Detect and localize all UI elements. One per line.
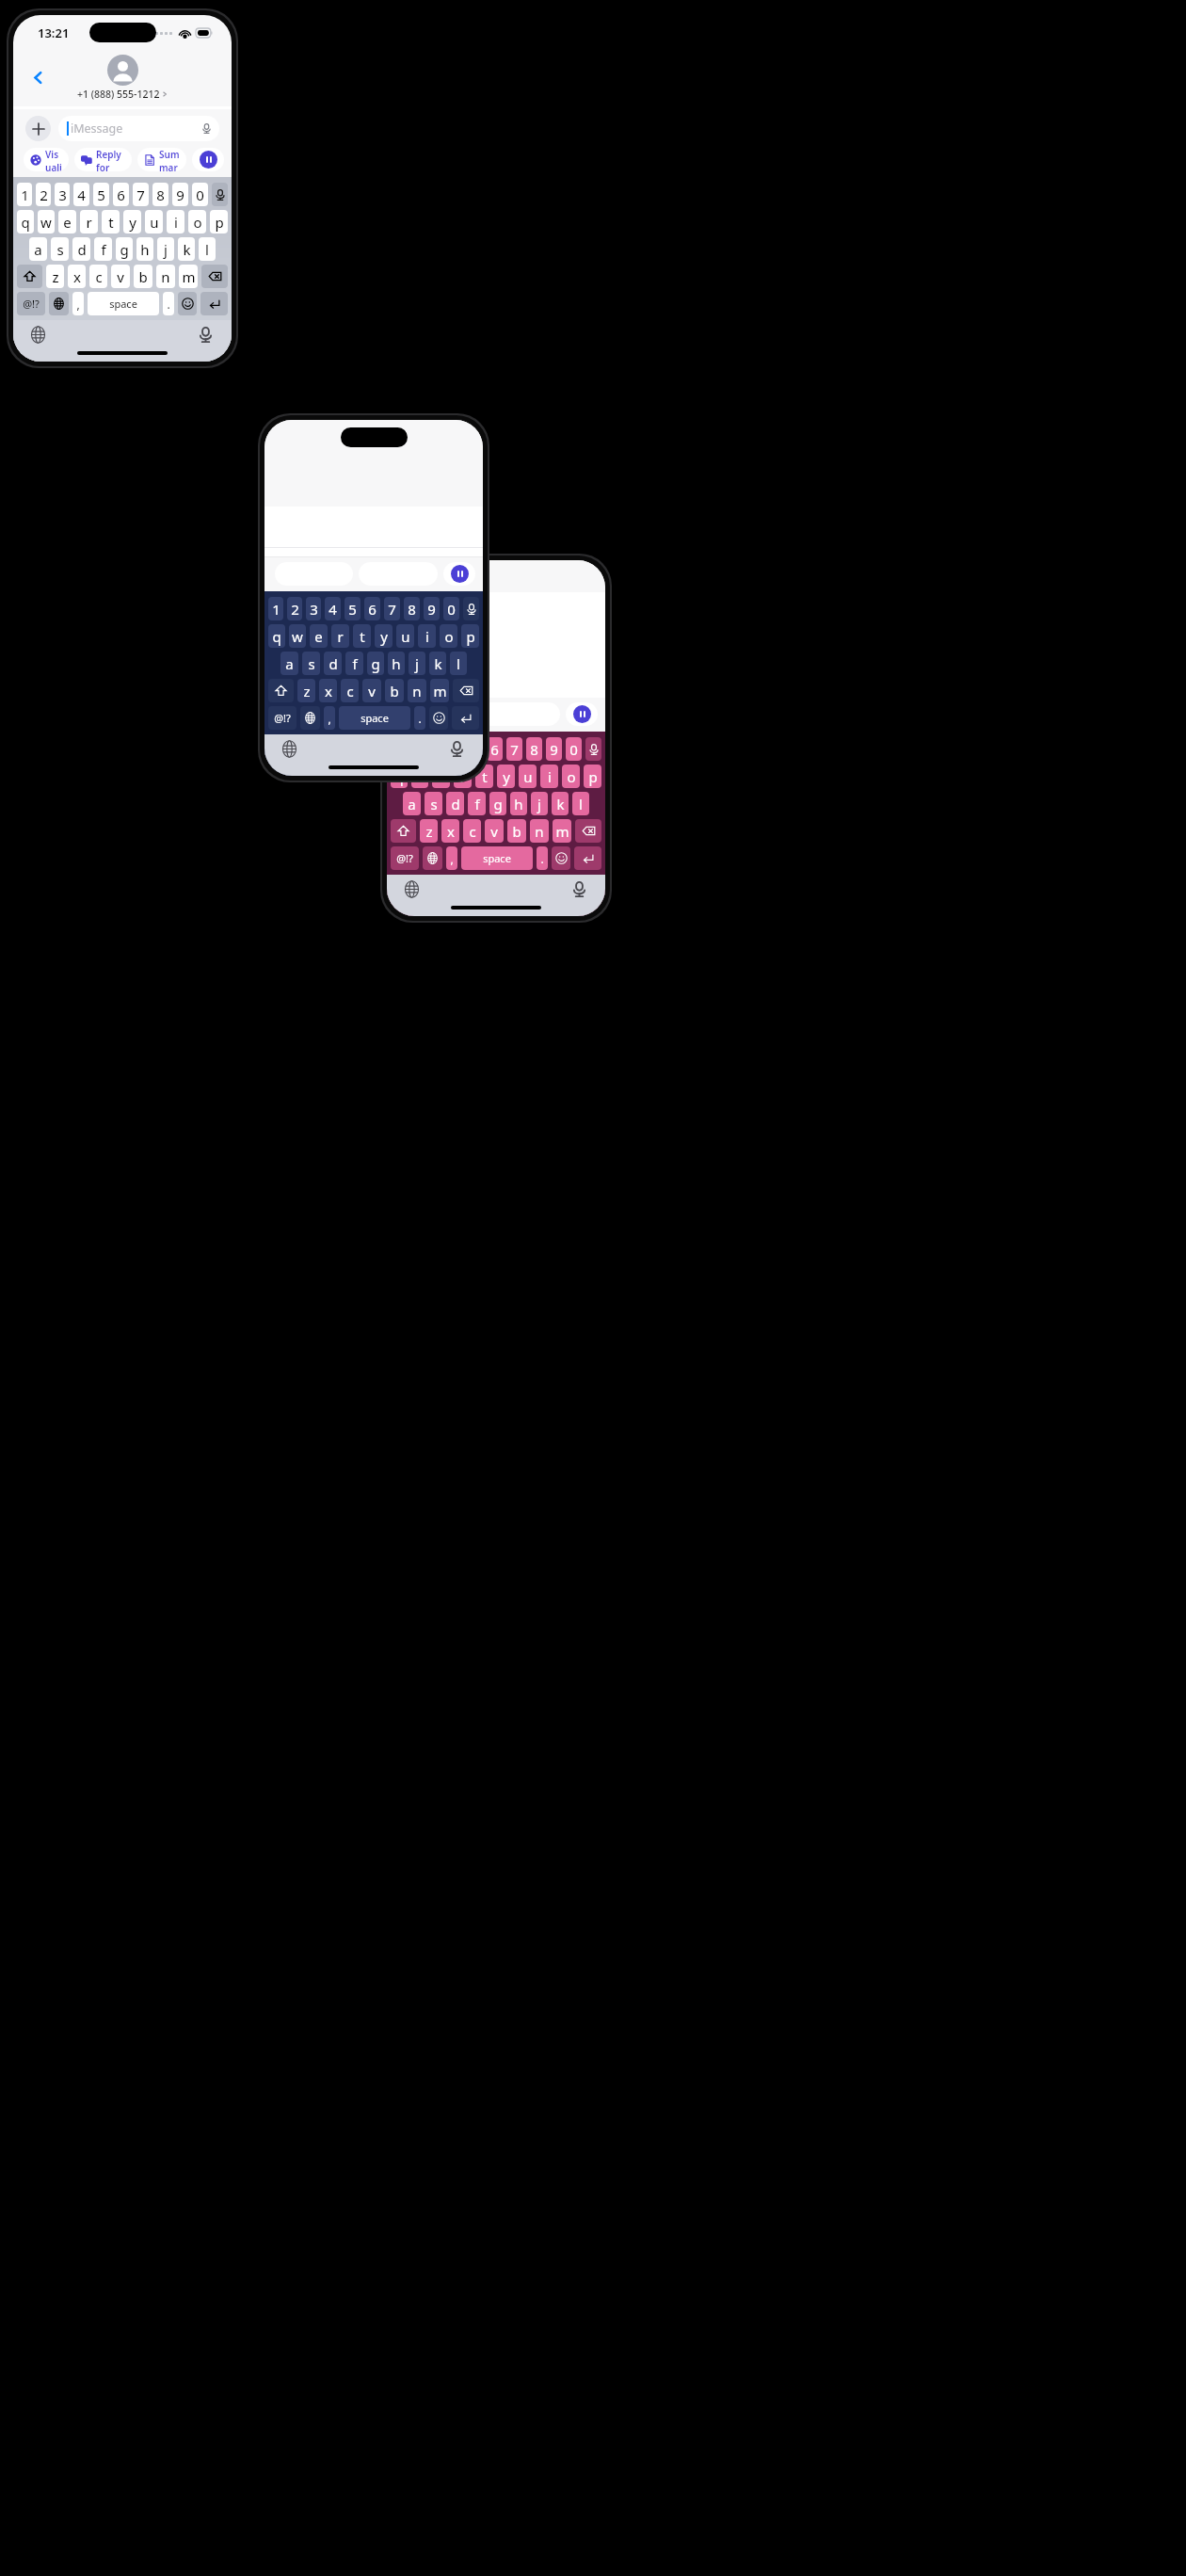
- button[interactable]: 2: [36, 183, 51, 206]
- button[interactable]: space: [461, 846, 533, 870]
- button[interactable]: z: [297, 679, 315, 702]
- button[interactable]: y: [497, 765, 515, 788]
- button[interactable]: w: [38, 210, 55, 233]
- button[interactable]: 9: [424, 597, 440, 620]
- button[interactable]: n: [408, 679, 426, 702]
- button[interactable]: n: [530, 819, 549, 843]
- button[interactable]: Return: [200, 292, 228, 315]
- button[interactable]: 7: [384, 597, 400, 620]
- button[interactable]: t: [102, 210, 120, 233]
- button[interactable]: Dictate: [568, 877, 590, 900]
- button[interactable]: Summarize: [137, 148, 186, 171]
- button[interactable]: j: [409, 652, 425, 675]
- button[interactable]: ,: [324, 706, 335, 730]
- button[interactable]: o: [440, 624, 457, 648]
- button[interactable]: 4: [447, 737, 463, 761]
- button[interactable]: a: [403, 792, 421, 815]
- button[interactable]: iMessage: [58, 116, 219, 141]
- button[interactable]: u: [396, 624, 414, 648]
- button[interactable]: l: [450, 652, 467, 675]
- button[interactable]: h: [388, 652, 405, 675]
- button[interactable]: Back: [24, 63, 52, 91]
- button[interactable]: q: [17, 210, 34, 233]
- button[interactable]: y: [375, 624, 393, 648]
- button[interactable]: 2: [287, 597, 302, 620]
- button[interactable]: Visualize: [24, 148, 69, 171]
- button[interactable]: c: [89, 265, 107, 288]
- button[interactable]: Emoji: [552, 846, 570, 870]
- button[interactable]: u: [519, 765, 537, 788]
- button[interactable]: s: [425, 792, 442, 815]
- button[interactable]: a: [29, 237, 47, 261]
- button[interactable]: f: [345, 652, 363, 675]
- button[interactable]: i: [418, 624, 436, 648]
- button[interactable]: Emoji: [429, 706, 448, 730]
- button[interactable]: e: [310, 624, 328, 648]
- button[interactable]: Switch keyboard: [278, 737, 300, 760]
- button[interactable]: @!?: [391, 846, 419, 870]
- button[interactable]: b: [134, 265, 152, 288]
- button[interactable]: Reply for me: [74, 148, 132, 171]
- button[interactable]: Backspace: [201, 265, 228, 288]
- button[interactable]: Switch keyboard: [400, 877, 423, 900]
- button[interactable]: Dictate: [585, 737, 601, 761]
- button[interactable]: Dictate: [194, 323, 216, 346]
- button[interactable]: v: [362, 679, 381, 702]
- button[interactable]: a: [280, 652, 298, 675]
- button[interactable]: 9: [172, 183, 188, 206]
- button[interactable]: w: [411, 765, 428, 788]
- button[interactable]: 0: [192, 183, 208, 206]
- button[interactable]: i: [540, 765, 558, 788]
- button[interactable]: t: [475, 765, 493, 788]
- button[interactable]: x: [319, 679, 337, 702]
- button[interactable]: z: [420, 819, 438, 843]
- button[interactable]: 8: [526, 737, 542, 761]
- button[interactable]: space: [88, 292, 159, 315]
- button[interactable]: @!?: [268, 706, 296, 730]
- button[interactable]: o: [562, 765, 580, 788]
- button[interactable]: t: [353, 624, 371, 648]
- button[interactable]: j: [531, 792, 548, 815]
- button[interactable]: 9: [546, 737, 562, 761]
- button[interactable]: b: [507, 819, 526, 843]
- button[interactable]: Return: [574, 846, 601, 870]
- button[interactable]: i: [167, 210, 184, 233]
- button[interactable]: p: [210, 210, 228, 233]
- button[interactable]: ,: [72, 292, 84, 315]
- button[interactable]: m: [553, 819, 571, 843]
- button[interactable]: 8: [404, 597, 420, 620]
- button[interactable]: y: [123, 210, 141, 233]
- button[interactable]: Shift: [268, 679, 294, 702]
- button[interactable]: d: [72, 237, 90, 261]
- button[interactable]: 5: [345, 597, 361, 620]
- button[interactable]: 4: [325, 597, 341, 620]
- button[interactable]: 0: [443, 597, 459, 620]
- button[interactable]: Dictate: [463, 597, 479, 620]
- button[interactable]: q: [391, 765, 408, 788]
- button[interactable]: g: [116, 237, 133, 261]
- button[interactable]: p: [461, 624, 479, 648]
- button[interactable]: s: [51, 237, 69, 261]
- button[interactable]: Shift: [17, 265, 42, 288]
- button[interactable]: 6: [364, 597, 380, 620]
- button[interactable]: d: [446, 792, 464, 815]
- button[interactable]: r: [331, 624, 349, 648]
- button[interactable]: .: [414, 706, 425, 730]
- button[interactable]: Dictate: [445, 737, 468, 760]
- button[interactable]: 5: [93, 183, 109, 206]
- button[interactable]: v: [111, 265, 130, 288]
- button[interactable]: Pause: [192, 148, 224, 171]
- button[interactable]: j: [157, 237, 174, 261]
- button[interactable]: m: [430, 679, 449, 702]
- button[interactable]: f: [468, 792, 486, 815]
- button[interactable]: 7: [133, 183, 149, 206]
- button[interactable]: Switch keyboard: [26, 323, 49, 346]
- button[interactable]: @!?: [17, 292, 45, 315]
- button[interactable]: k: [429, 652, 446, 675]
- button[interactable]: x: [68, 265, 86, 288]
- button[interactable]: 4: [73, 183, 89, 206]
- button[interactable]: m: [179, 265, 198, 288]
